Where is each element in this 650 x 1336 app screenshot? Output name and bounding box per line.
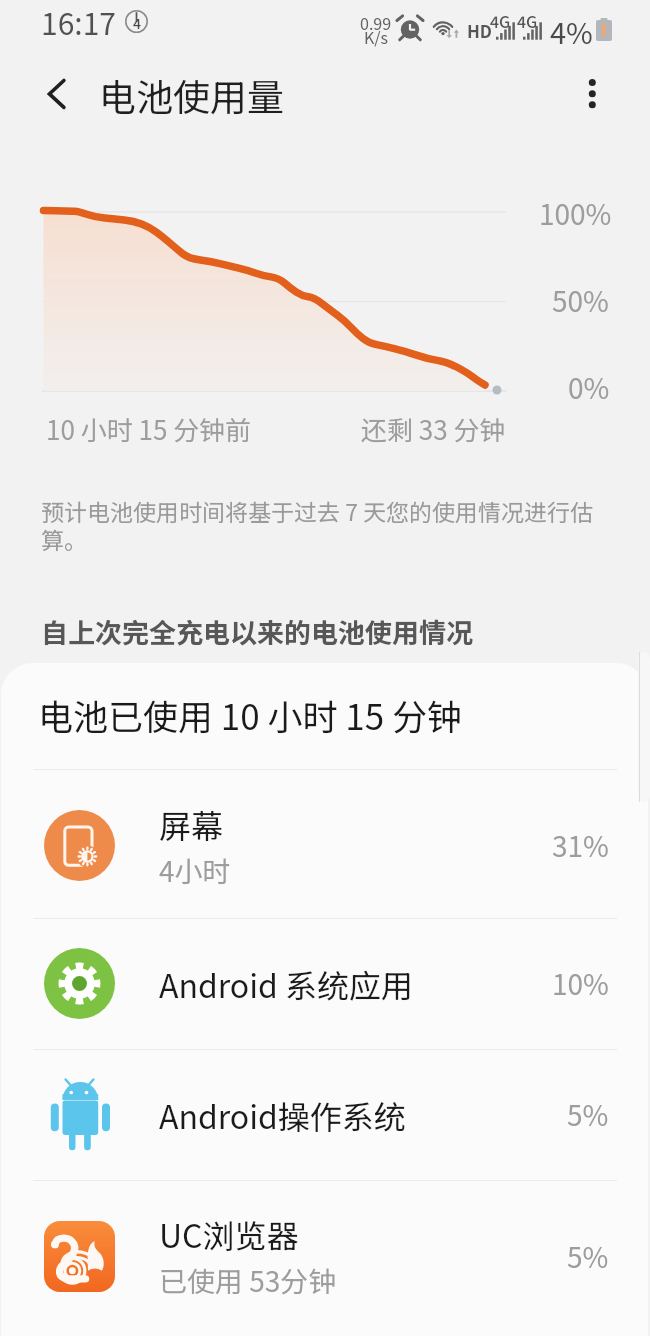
staticText: 100% xyxy=(539,193,612,234)
staticText: 4 xyxy=(133,13,141,33)
staticText: 16:17 xyxy=(41,0,116,43)
staticText: 电池已使用 10 小时 15 分钟 xyxy=(38,689,463,740)
button[interactable]: Android 系统应用 xyxy=(1,918,648,1049)
button[interactable]: More options xyxy=(566,72,618,124)
staticText: 31% xyxy=(552,825,609,866)
staticText: 已使用 53分钟 xyxy=(159,1260,337,1301)
staticText: 10% xyxy=(552,963,609,1004)
staticText: 屏幕 xyxy=(159,801,224,847)
staticText: UC浏览器 xyxy=(159,1211,299,1257)
staticText: 50% xyxy=(552,280,609,321)
staticText: 5% xyxy=(567,1236,609,1277)
button[interactable]: Android操作系统 xyxy=(1,1049,648,1180)
staticText: 4小时 xyxy=(159,850,231,891)
staticText: 电池使用量 xyxy=(99,68,284,122)
staticText: 自上次完全充电以来的电池使用情况 xyxy=(41,612,473,651)
staticText: 5% xyxy=(567,1094,609,1135)
staticText: 0% xyxy=(568,367,610,408)
staticText: 10 小时 15 分钟前 xyxy=(46,410,252,448)
staticText: 4G xyxy=(490,9,511,32)
staticText: Android 系统应用 xyxy=(159,961,413,1007)
button[interactable]: Back xyxy=(26,72,78,124)
button[interactable]: UC浏览器 xyxy=(1,1180,648,1332)
staticText: HD xyxy=(467,18,493,43)
staticText: K/s xyxy=(364,25,389,48)
staticText: 还剩 33 分钟 xyxy=(361,410,506,448)
staticText: 4% xyxy=(550,10,593,52)
staticText: 0.99 xyxy=(360,11,392,34)
staticText: Android操作系统 xyxy=(159,1092,406,1138)
button[interactable]: 屏幕 xyxy=(1,769,648,922)
staticText: 预计电池使用时间将基于过去 7 天您的使用情况进行估算。 xyxy=(41,494,597,556)
staticText: 4G xyxy=(517,9,538,32)
